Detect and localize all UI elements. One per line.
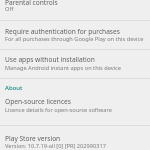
staticText: Open-source licences <box>5 97 71 106</box>
button[interactable]: Use apps without installation <box>0 50 150 78</box>
staticText: Off <box>5 5 14 13</box>
staticText: About <box>5 84 23 92</box>
button[interactable]: Open-source licences <box>0 94 150 125</box>
staticText: Version: 10.7.19-all [0] [PR] 202990317 <box>5 142 106 150</box>
staticText: Licence details for open-source software <box>5 106 112 114</box>
staticText: Require authentication for purchases <box>5 27 120 36</box>
staticText: Play Store version <box>5 134 61 143</box>
button[interactable]: Play Store version <box>0 126 150 150</box>
staticText: Parental controls <box>5 0 58 7</box>
staticText: For all purchases through Google Play on… <box>5 35 144 43</box>
staticText: Manage Android instant apps on this devi… <box>5 64 121 72</box>
staticText: Use apps without installation <box>5 55 95 64</box>
button[interactable]: Require authentication for purchases <box>0 21 150 49</box>
button[interactable]: Parental controls <box>0 0 150 20</box>
